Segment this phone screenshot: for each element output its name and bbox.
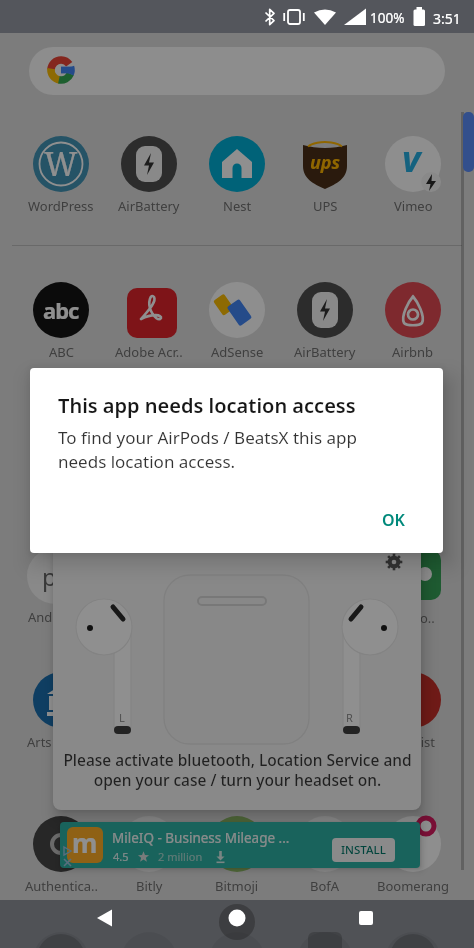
staticText: R (346, 710, 353, 725)
staticText: 3:51 (433, 9, 461, 28)
staticText: UPS (313, 197, 338, 215)
staticText: 100% (370, 9, 405, 27)
staticText: AirBattery (118, 197, 180, 215)
staticText: Android P.. (28, 608, 94, 626)
staticText: ABC (49, 343, 74, 361)
button[interactable] (29, 47, 445, 95)
button[interactable] (60, 822, 420, 868)
button[interactable] (209, 136, 265, 192)
staticText: Authentica.. (25, 877, 98, 895)
button[interactable]: INSTALL (332, 838, 395, 862)
button[interactable] (121, 282, 177, 338)
button[interactable] (209, 816, 265, 872)
staticText: Boomerang (377, 877, 450, 895)
button[interactable] (385, 282, 441, 338)
staticText: WordPress (28, 197, 94, 215)
staticText: Vimeo (394, 197, 433, 215)
button[interactable] (33, 672, 89, 728)
button[interactable] (121, 136, 177, 192)
staticText: Bitly (136, 877, 163, 895)
button[interactable]: p (27, 548, 83, 604)
staticText: Nest (223, 197, 252, 215)
button[interactable]: € (385, 672, 441, 728)
button[interactable] (297, 816, 353, 872)
staticText: Adobe Acr.. (115, 343, 183, 361)
staticText: AdSense (211, 343, 264, 361)
staticText: v (402, 134, 421, 183)
staticText: This app needs location access (58, 392, 356, 419)
button[interactable] (215, 896, 259, 940)
staticText: abc (43, 295, 79, 325)
button[interactable] (83, 902, 127, 946)
staticText: AirBattery (294, 343, 356, 361)
button[interactable]: ups (297, 136, 353, 192)
staticText: MileIQ - Business Mileage ... (112, 829, 290, 847)
staticText: Assist (400, 733, 436, 751)
staticText: ups (310, 150, 341, 175)
staticText: W (44, 142, 78, 186)
button[interactable] (33, 816, 89, 872)
button[interactable]: abc (33, 282, 89, 338)
staticText: p (42, 560, 57, 593)
staticText: To find your AirPods / BeatsX this app n… (58, 426, 357, 473)
staticText: BofA (310, 877, 340, 895)
button[interactable] (209, 282, 265, 338)
staticText: Please activate bluetooth, Location Serv… (63, 749, 412, 791)
staticText: m (72, 827, 98, 860)
staticText: INSTALL (341, 842, 386, 858)
button[interactable]: W (33, 136, 89, 192)
staticText: 2 million (158, 849, 203, 864)
staticText: 4.5 (113, 849, 129, 864)
staticText: Arts & Cul.. (27, 733, 95, 751)
staticText: OK (382, 509, 405, 531)
staticText: Bitmoji (215, 877, 259, 895)
button[interactable]: OK (362, 501, 424, 539)
button[interactable] (121, 816, 177, 872)
button[interactable] (385, 816, 441, 872)
button[interactable] (344, 902, 388, 946)
staticText: L (119, 710, 125, 725)
staticText: o.. (420, 609, 435, 627)
staticText: Airbnb (392, 343, 434, 361)
button[interactable]: v (385, 136, 441, 192)
button[interactable] (385, 544, 441, 600)
button[interactable] (297, 282, 353, 338)
